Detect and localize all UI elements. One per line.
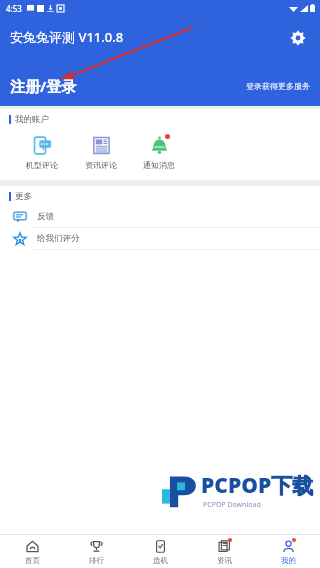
staticText: 排行 xyxy=(89,556,104,565)
button[interactable]: 注册/登录 xyxy=(0,66,320,106)
staticText: 4:53 xyxy=(6,3,22,14)
button[interactable]: 反馈 xyxy=(0,206,320,228)
button[interactable]: 通知消息 xyxy=(130,133,188,170)
button[interactable]: 排行 xyxy=(64,535,128,568)
staticText: 资讯 xyxy=(217,556,232,565)
staticText: 反馈 xyxy=(37,211,54,222)
staticText: 更多 xyxy=(15,191,32,202)
staticText: PCPOP Download xyxy=(203,500,261,510)
staticText: 选机 xyxy=(153,556,168,565)
button[interactable]: 资讯 xyxy=(192,535,256,568)
button[interactable]: 机型评论 xyxy=(12,133,72,170)
staticText: PCPOP下载 xyxy=(201,471,314,500)
staticText: 注册/登录 xyxy=(10,76,77,96)
staticText: 通知消息 xyxy=(143,160,175,170)
staticText: 登录获得更多服务 xyxy=(246,81,310,91)
staticText: 给我们评分 xyxy=(37,233,80,244)
staticText: 机型评论 xyxy=(26,160,58,170)
button[interactable]: 资讯评论 xyxy=(72,133,130,170)
staticText: 安兔兔评测 V11.0.8 xyxy=(10,28,124,46)
button[interactable]: 我的 xyxy=(256,535,320,568)
button[interactable]: 选机 xyxy=(128,535,192,568)
staticText: 首页 xyxy=(25,556,40,565)
staticText: 我的 xyxy=(281,556,296,565)
button[interactable]: 给我们评分 xyxy=(0,228,320,250)
staticText: 我的账户 xyxy=(15,114,49,125)
button[interactable]: Settings xyxy=(284,24,312,52)
button[interactable]: 首页 xyxy=(0,535,64,568)
staticText: 资讯评论 xyxy=(85,160,117,170)
